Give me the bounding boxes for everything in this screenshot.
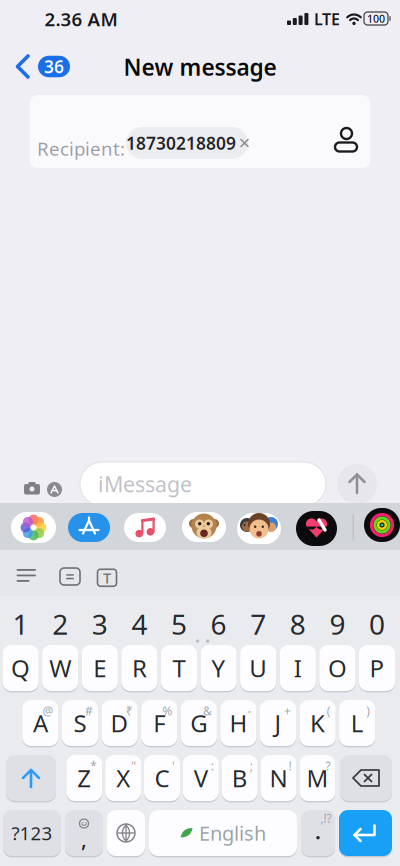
staticText: 2.36 AM (44, 7, 117, 31)
button[interactable]: ?123 (3, 810, 61, 856)
staticText: ' (172, 758, 175, 774)
staticText: 3 (92, 605, 108, 643)
staticText: ; (250, 758, 253, 774)
button[interactable]: L (339, 700, 375, 746)
button[interactable]: D (101, 700, 138, 746)
staticText: 8 (290, 605, 306, 643)
button[interactable]: R (121, 645, 157, 691)
button[interactable]: Z (66, 755, 102, 801)
button[interactable]: iMessage text field (80, 462, 326, 506)
staticText: R (132, 652, 147, 684)
button[interactable]: 3 (82, 607, 118, 641)
button[interactable]: U (240, 645, 276, 691)
button[interactable]: S (62, 700, 98, 746)
staticText: Q (11, 652, 30, 684)
button[interactable]: 4 (121, 607, 157, 641)
staticText: 7 (250, 605, 266, 643)
staticText: ?123 (11, 821, 52, 845)
staticText: T (172, 652, 185, 684)
staticText: + (284, 703, 291, 719)
button[interactable]: K (299, 700, 336, 746)
staticText: % (162, 703, 172, 719)
button[interactable]: Space (149, 810, 297, 856)
staticText: ₹ (126, 703, 133, 719)
staticText: O (328, 652, 347, 684)
staticText: 18730218809 (126, 131, 236, 154)
staticText: # (85, 703, 93, 719)
button[interactable]: Send (337, 464, 377, 504)
staticText: ( (327, 703, 331, 719)
button[interactable]: T (161, 645, 197, 691)
button[interactable]: Stickers (296, 511, 337, 546)
button[interactable]: 5 (161, 607, 197, 641)
staticText: G (190, 707, 207, 739)
button[interactable]: O (319, 645, 355, 691)
button[interactable]: H (220, 700, 256, 746)
button[interactable]: Memoji stickers (237, 513, 281, 544)
button[interactable]: 1 (3, 607, 39, 641)
button[interactable]: N (261, 755, 297, 801)
staticText: F (153, 707, 165, 739)
staticText: 2 (52, 605, 68, 643)
button[interactable]: E (82, 645, 118, 691)
button[interactable]: Apps (47, 482, 62, 497)
button[interactable]: 6 (201, 607, 237, 641)
button[interactable]: F (141, 700, 177, 746)
staticText: ,!? (320, 810, 331, 826)
button[interactable]: Delete (340, 755, 392, 801)
staticText: S (73, 707, 86, 739)
button[interactable]: P (359, 645, 395, 691)
button[interactable]: M (299, 755, 335, 801)
button[interactable]: App Store (68, 513, 110, 542)
button[interactable]: A (22, 700, 58, 746)
staticText: H (229, 707, 247, 739)
button[interactable]: Q (2, 645, 39, 691)
button[interactable]: 8 (280, 607, 316, 641)
button[interactable]: 9 (319, 607, 355, 641)
button[interactable]: Music (124, 513, 166, 542)
button[interactable]: Keyboard menu (16, 569, 36, 571)
staticText: B (232, 762, 248, 794)
button[interactable]: Y (200, 645, 237, 691)
staticText: : (211, 758, 214, 774)
button[interactable]: Shift (6, 755, 56, 801)
staticText: D (111, 707, 129, 739)
staticText: English (199, 820, 266, 846)
button[interactable]: I (280, 645, 316, 691)
button[interactable]: 7 (240, 607, 276, 641)
staticText: T (103, 568, 111, 587)
button[interactable]: Return (339, 810, 392, 856)
button[interactable]: Camera (24, 482, 40, 492)
button[interactable]: X (105, 755, 141, 801)
button[interactable]: Photos (11, 512, 56, 543)
button[interactable]: Back (15, 54, 70, 79)
staticText: J (274, 707, 281, 739)
button[interactable]: J (260, 700, 296, 746)
button[interactable]: 0 (359, 607, 395, 641)
button[interactable]: Memoji monkey sticker (182, 512, 226, 542)
button[interactable]: G (181, 700, 217, 746)
button[interactable]: Clipboard (60, 568, 80, 585)
staticText: & (203, 703, 212, 719)
staticText: X (116, 762, 130, 794)
button[interactable]: Activity stickers (364, 508, 400, 542)
button[interactable]: C (144, 755, 180, 801)
button[interactable]: Add contact (334, 128, 356, 139)
staticText: ? (325, 758, 330, 774)
button[interactable]: V (183, 755, 219, 801)
staticText: 36 (44, 55, 64, 78)
button[interactable]: 2 (42, 607, 78, 641)
staticText: 9 (329, 605, 345, 643)
staticText: LTE (314, 8, 340, 30)
staticText: * (90, 758, 97, 774)
button[interactable]: Emoji and comma (65, 810, 103, 856)
staticText: @ (42, 703, 53, 719)
button[interactable]: W (42, 645, 78, 691)
button[interactable]: Remove recipient 18730218809 (126, 127, 248, 159)
button[interactable]: Text options (97, 568, 116, 587)
staticText: 5 (171, 605, 187, 643)
staticText: 4 (131, 605, 147, 643)
button[interactable]: B (222, 755, 258, 801)
button[interactable]: Period (301, 810, 335, 856)
button[interactable]: Switch keyboard (107, 810, 145, 856)
